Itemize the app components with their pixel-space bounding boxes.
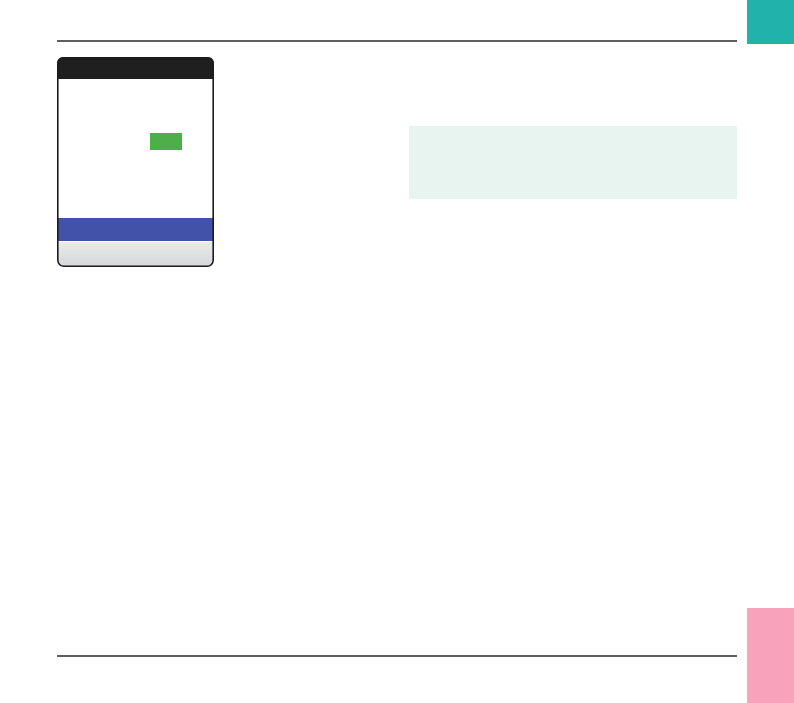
button[interactable]: Device screen preview	[57, 57, 214, 267]
